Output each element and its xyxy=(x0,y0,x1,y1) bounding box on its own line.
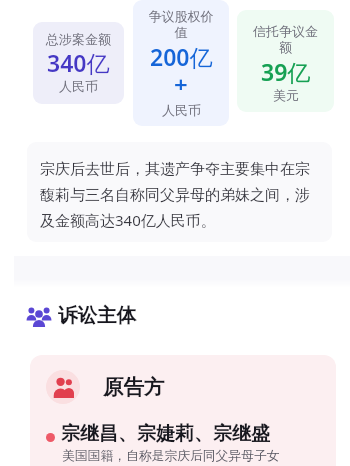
button[interactable]: Plaintiffs xyxy=(30,355,336,466)
button[interactable]: 宗庆后去世后，其遗产争夺主要集中在宗馥莉与三名自称同父异母的弟妹之间，涉及金额高… xyxy=(27,142,332,242)
staticText: 争议股权价值 xyxy=(146,8,216,41)
staticText: 人民币 xyxy=(59,78,98,94)
staticText: 39亿 xyxy=(261,56,311,87)
staticText: 200亿 xyxy=(150,41,213,72)
staticText: 美国国籍，自称是宗庆后同父异母子女 xyxy=(62,448,280,464)
button[interactable]: Parties xyxy=(28,303,136,328)
staticText: 宗庆后去世后，其遗产争夺主要集中在宗馥莉与三名自称同父异母的弟妹之间，涉及金额高… xyxy=(40,160,318,230)
button[interactable]: 争议股权价值 xyxy=(133,0,229,126)
staticText: 340亿 xyxy=(47,47,110,78)
staticText: 原告方 xyxy=(103,374,165,400)
staticText: 美元 xyxy=(273,87,299,103)
staticText: 信托争议金额 xyxy=(253,23,318,56)
other: Plaintiffs xyxy=(53,377,74,398)
staticText: 总涉案金额 xyxy=(46,31,111,47)
staticText: 宗继昌、宗婕莉、宗继盛 xyxy=(61,422,270,446)
button[interactable]: 信托争议金额 xyxy=(237,10,334,112)
button[interactable]: 总涉案金额 xyxy=(33,22,124,104)
staticText: + xyxy=(174,68,188,90)
staticText: 人民币 xyxy=(162,102,201,118)
staticText: 诉讼主体 xyxy=(58,303,136,328)
other: Parties xyxy=(28,305,50,327)
